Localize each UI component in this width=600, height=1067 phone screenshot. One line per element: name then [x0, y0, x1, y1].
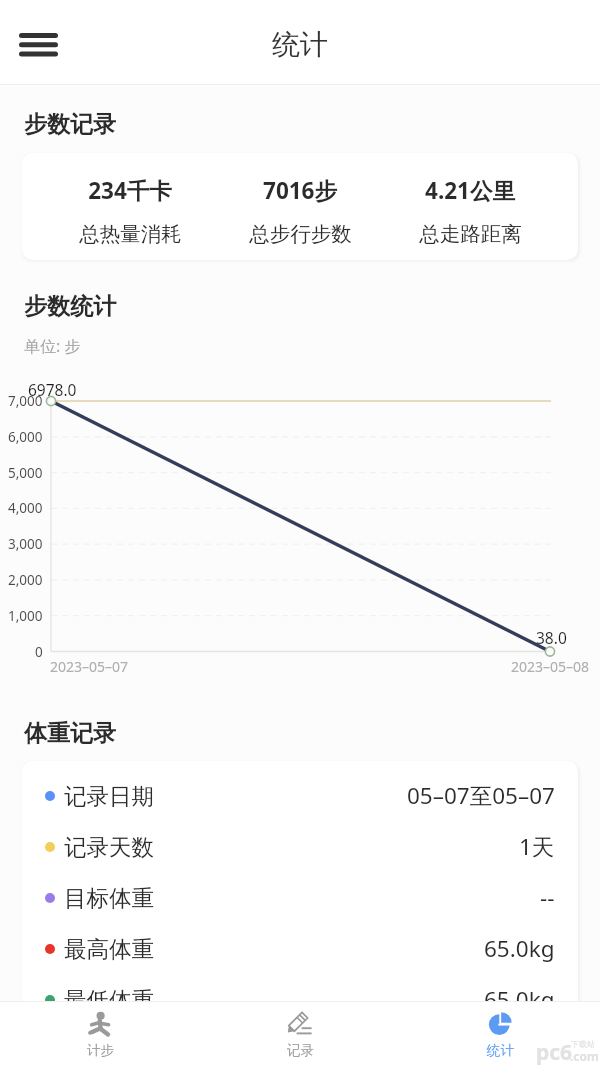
staticText: 6978.0: [28, 379, 77, 400]
staticText: 单位: 步: [24, 335, 81, 357]
staticText: 2023–05–08: [511, 657, 590, 676]
button[interactable]: Menu: [9, 16, 67, 74]
staticText: 最低体重: [64, 986, 154, 1014]
staticText: 234千卡: [88, 175, 172, 206]
staticText: 4,000: [8, 499, 43, 517]
staticText: 65.0kg: [484, 984, 555, 1015]
button[interactable]: 记录日期: [22, 770, 578, 821]
staticText: 4.21公里: [425, 175, 515, 206]
staticText: --: [540, 882, 555, 913]
button[interactable]: 计步: [0, 1002, 200, 1067]
staticText: 总走路距离: [419, 221, 522, 247]
staticText: 总步行步数: [249, 221, 352, 247]
staticText: 3,000: [8, 535, 43, 553]
staticText: pc6: [536, 1038, 573, 1067]
staticText: .com: [570, 1048, 599, 1064]
staticText: 1,000: [8, 607, 43, 625]
staticText: 0: [35, 643, 43, 661]
staticText: 38.0: [536, 627, 567, 648]
staticText: 下载站: [571, 1039, 595, 1049]
staticText: 总热量消耗: [79, 221, 182, 247]
staticText: 05–07至05–07: [407, 780, 555, 811]
staticText: 1天: [519, 831, 555, 862]
button[interactable]: 记录天数: [22, 821, 578, 872]
staticText: 2023–05–07: [50, 657, 129, 676]
staticText: 统计: [487, 1042, 514, 1059]
button[interactable]: 记录: [200, 1002, 400, 1067]
staticText: 65.0kg: [484, 933, 555, 964]
button[interactable]: 统计: [400, 1002, 600, 1067]
staticText: 体重记录: [24, 719, 116, 748]
staticText: 6,000: [8, 428, 43, 446]
staticText: 统计: [272, 27, 328, 62]
staticText: 7016步: [263, 175, 337, 206]
staticText: 5,000: [8, 464, 43, 482]
staticText: 7,000: [8, 392, 43, 410]
staticText: 记录: [287, 1042, 314, 1059]
staticText: 步数记录: [24, 110, 116, 139]
staticText: 步数统计: [24, 292, 116, 321]
button[interactable]: 目标体重: [22, 872, 578, 923]
staticText: 记录日期: [64, 782, 154, 810]
button[interactable]: 最高体重: [22, 923, 578, 974]
staticText: 2,000: [8, 571, 43, 589]
staticText: 计步: [87, 1042, 114, 1059]
staticText: 目标体重: [64, 884, 154, 912]
button[interactable]: 最低体重: [22, 974, 578, 1025]
staticText: 记录天数: [64, 833, 154, 861]
staticText: 最高体重: [64, 935, 154, 963]
